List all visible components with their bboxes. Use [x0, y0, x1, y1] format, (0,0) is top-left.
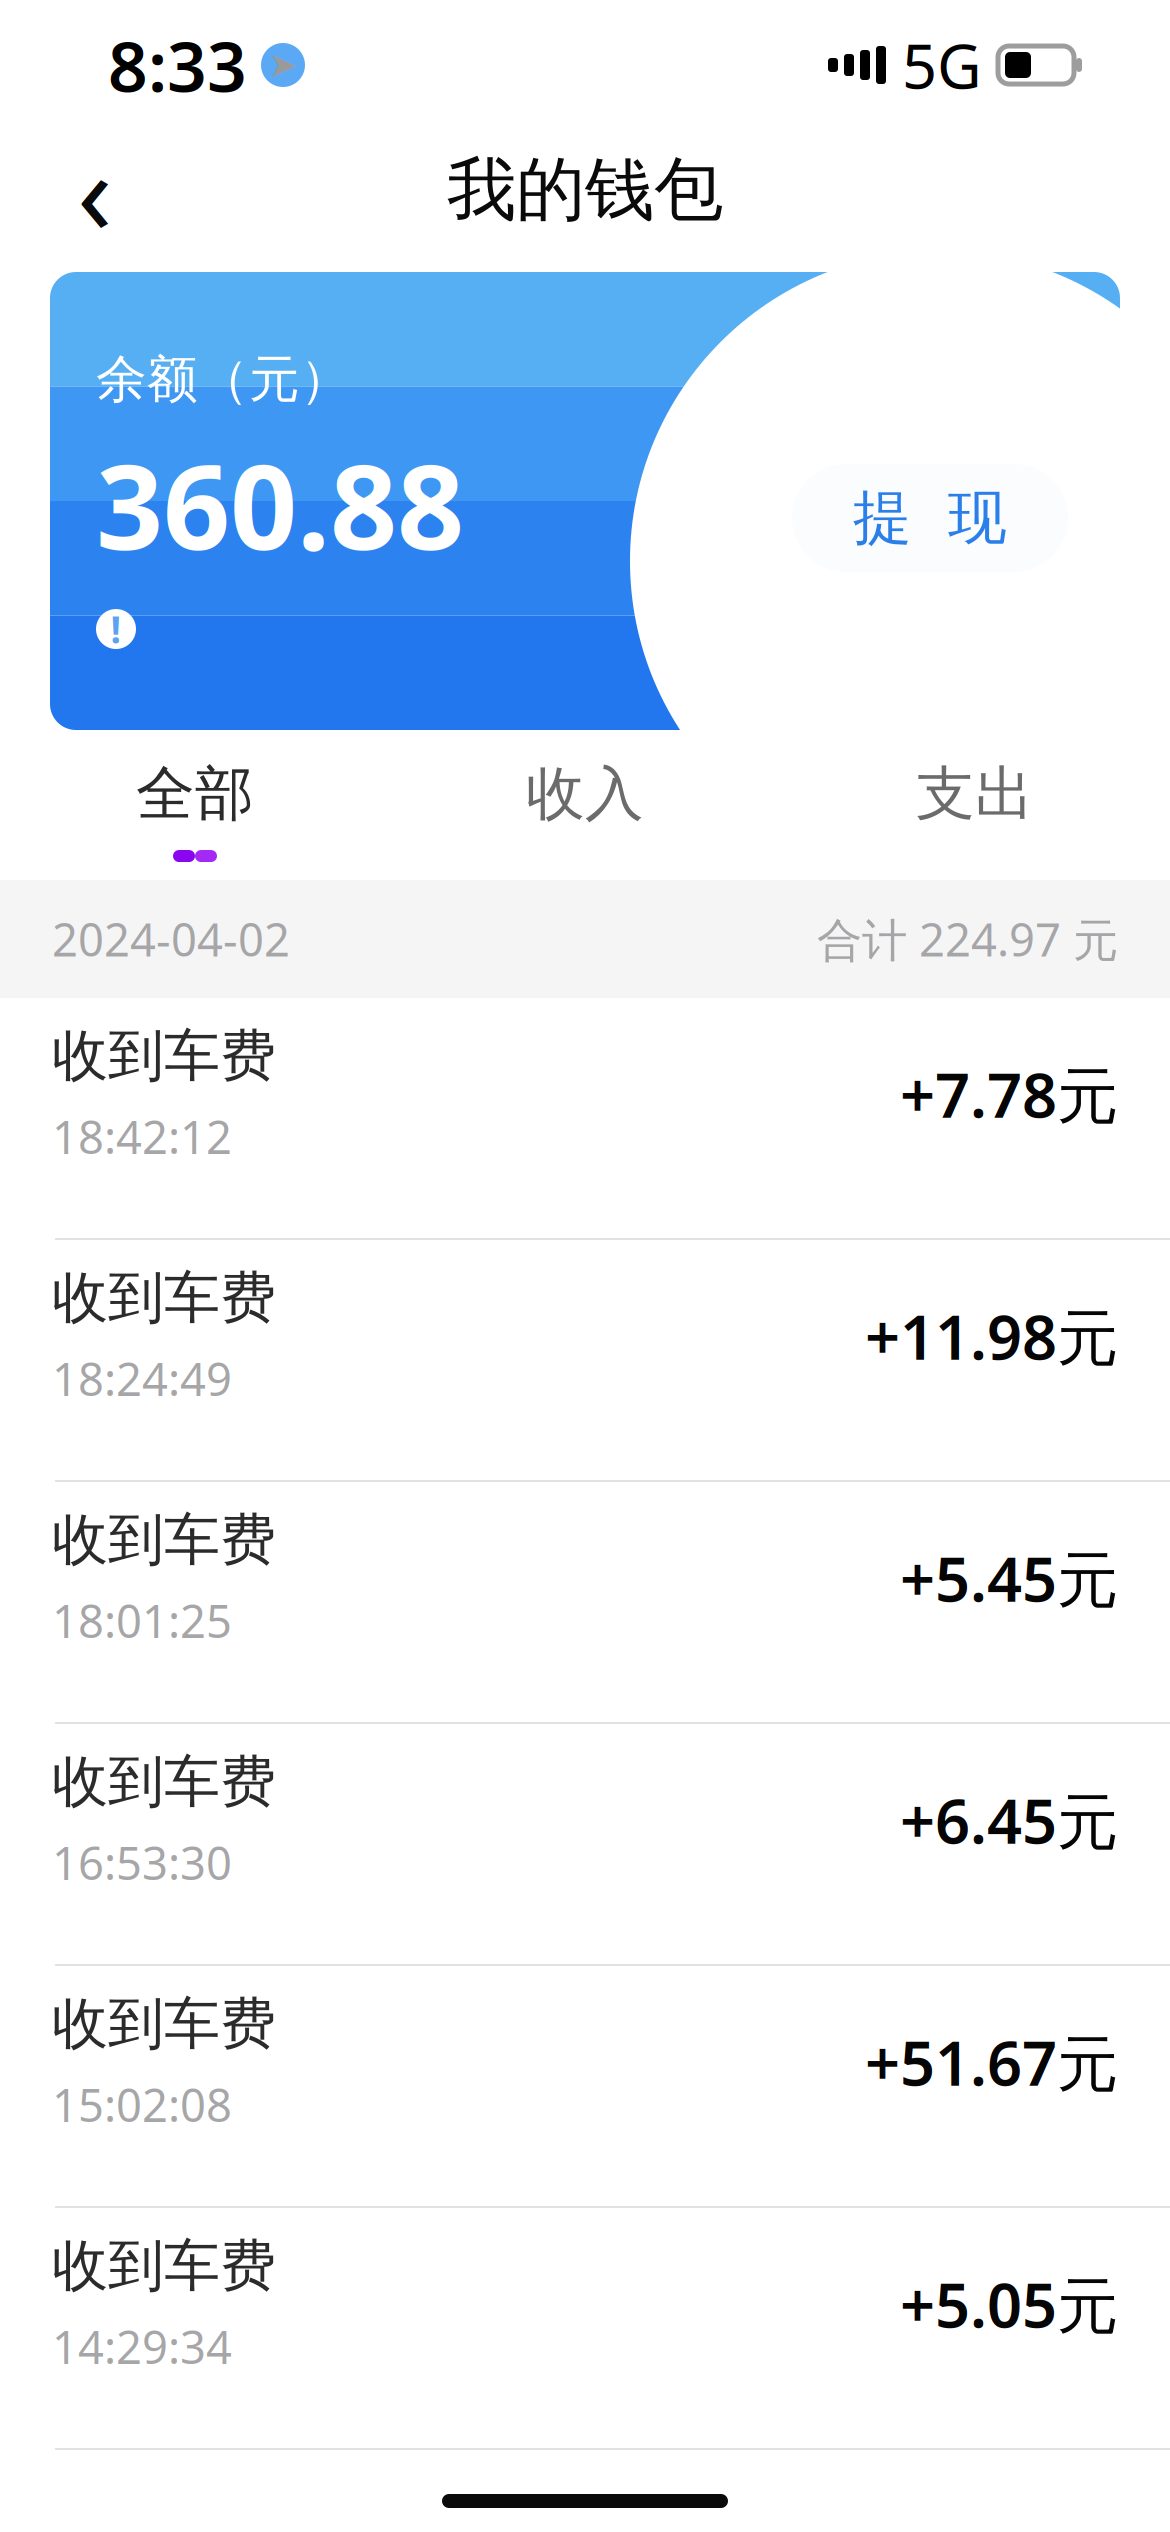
staticText: 收到车费	[52, 1505, 276, 1574]
staticText: 18:24:49	[52, 1348, 232, 1408]
staticText: 15:02:08	[52, 2074, 232, 2134]
staticText: 全部	[136, 758, 254, 830]
staticText: 18:42:12	[52, 1106, 232, 1166]
staticText: 收到车费	[52, 1021, 276, 1090]
staticText: ➤	[268, 45, 297, 85]
staticText: 360.88	[96, 426, 464, 582]
button[interactable]: 支出	[780, 740, 1170, 880]
staticText: 8:33	[108, 19, 247, 111]
button[interactable]: 收到车费	[0, 1966, 1170, 2208]
button[interactable]: 提 现	[792, 464, 1068, 572]
staticText: 我的钱包	[447, 147, 723, 233]
button[interactable]: 返回	[40, 135, 150, 245]
button[interactable]: 收入	[390, 740, 780, 880]
button[interactable]: 收到车费	[0, 1482, 1170, 1724]
staticText: 2024-04-02	[52, 909, 290, 969]
staticText: 14:29:34	[52, 2316, 232, 2376]
staticText: 18:01:25	[52, 1590, 232, 1650]
staticText: 收到车费	[52, 1263, 276, 1332]
staticText: +5.45元	[900, 1537, 1118, 1619]
staticText: +6.45元	[900, 1779, 1118, 1861]
staticText: +7.78元	[900, 1053, 1118, 1135]
staticText: 余额（元）	[96, 348, 351, 410]
button[interactable]: 收到车费	[0, 998, 1170, 1240]
staticText: 提 现	[853, 482, 1007, 554]
button[interactable]: 收到车费	[0, 1240, 1170, 1482]
staticText: ‹	[77, 114, 113, 266]
staticText: 16:53:30	[52, 1832, 232, 1892]
staticText: +11.98元	[865, 1295, 1118, 1377]
staticText: +51.67元	[865, 2021, 1118, 2103]
staticText: !	[110, 604, 121, 654]
staticText: 收到车费	[52, 2231, 276, 2300]
button[interactable]: 全部	[0, 740, 390, 880]
staticText: 收到车费	[52, 1989, 276, 2058]
staticText: 收到车费	[52, 1747, 276, 1816]
staticText: 5G	[902, 24, 982, 106]
staticText: +5.05元	[900, 2263, 1118, 2345]
staticText: 支出	[916, 758, 1034, 830]
staticText: 合计 224.97 元	[817, 909, 1118, 969]
button[interactable]: 收到车费	[0, 2208, 1170, 2450]
staticText: 收入	[526, 758, 644, 830]
button[interactable]: 收到车费	[0, 1724, 1170, 1966]
